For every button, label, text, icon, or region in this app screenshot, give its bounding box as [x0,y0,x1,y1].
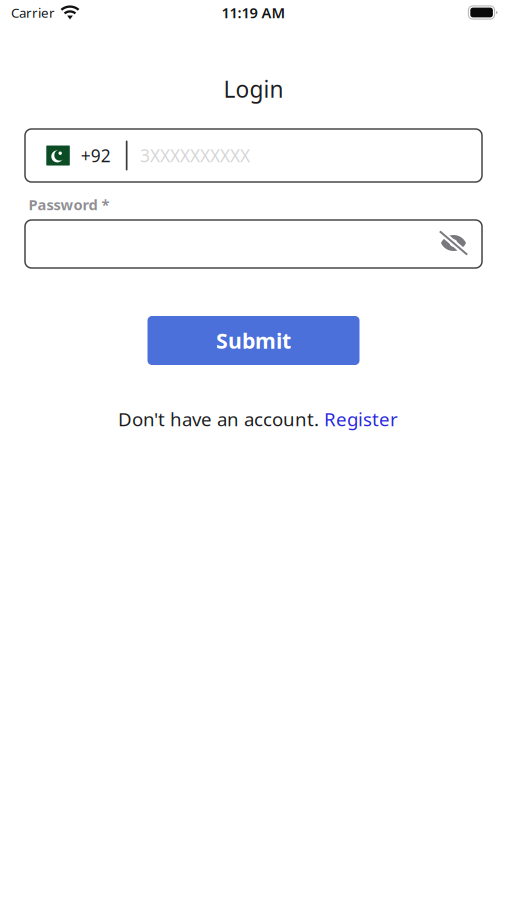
button[interactable]: Show password [440,221,482,267]
staticText: 11:19 AM [221,3,285,22]
button[interactable]: Submit [147,316,359,365]
staticText: 3XXXXXXXXXX [140,144,250,167]
staticText: Carrier [11,4,55,21]
staticText: Login [223,74,283,104]
staticText: Password * [28,195,109,214]
staticText: Submit [216,326,291,355]
staticText: Don't have an account. [118,407,319,431]
staticText: +92 [81,144,111,167]
button[interactable]: Register [324,407,398,431]
staticText: Register [324,407,398,431]
